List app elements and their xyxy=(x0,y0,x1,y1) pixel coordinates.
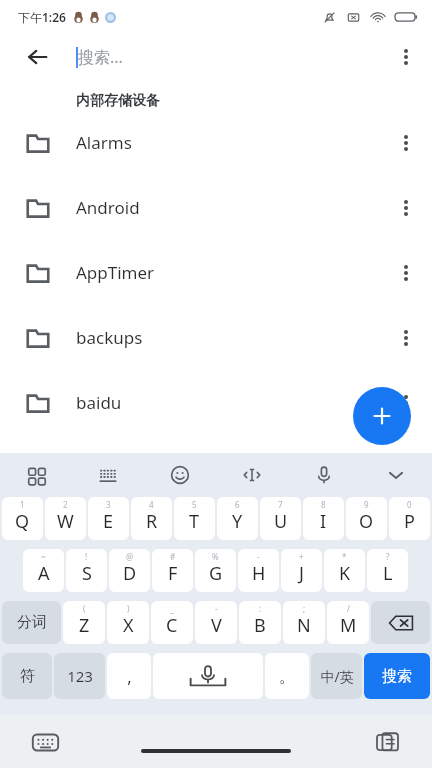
staticText: 0 xyxy=(407,499,412,510)
staticText: N xyxy=(297,613,311,638)
staticText: O xyxy=(359,509,374,534)
button[interactable]: - xyxy=(195,601,237,644)
button[interactable]: Keyboard layout xyxy=(72,453,144,497)
staticText: H xyxy=(252,561,266,586)
staticText: U xyxy=(274,509,288,534)
staticText: 7 xyxy=(278,499,283,510)
staticText: - xyxy=(215,603,218,614)
button[interactable]: # xyxy=(152,549,193,592)
button[interactable]: 符 xyxy=(2,653,52,699)
button[interactable]: _ xyxy=(151,601,193,644)
button[interactable]: Grid xyxy=(0,453,72,497)
staticText: R xyxy=(146,509,158,534)
staticText: / xyxy=(347,603,350,614)
staticText: baidu xyxy=(76,391,122,414)
button[interactable]: 中/英 xyxy=(311,653,362,699)
button[interactable]: Voice input xyxy=(288,453,360,497)
button[interactable]: Emoji xyxy=(144,453,216,497)
staticText: : xyxy=(259,603,262,614)
button[interactable]: 9 xyxy=(346,497,387,540)
button[interactable]: Backspace xyxy=(371,601,430,644)
staticText: ~ xyxy=(41,551,46,562)
button[interactable]: backups xyxy=(0,305,432,370)
button[interactable]: 8 xyxy=(303,497,344,540)
staticText: + xyxy=(299,551,304,562)
button[interactable]: ) xyxy=(107,601,149,644)
staticText: 8 xyxy=(321,499,326,510)
button[interactable]: Android xyxy=(0,175,432,240)
button[interactable]: Options for baidu xyxy=(380,370,432,435)
button[interactable]: 5 xyxy=(174,497,215,540)
button[interactable]: 搜索... xyxy=(76,34,380,80)
button[interactable]: Options for Alarms xyxy=(380,110,432,175)
staticText: 符 xyxy=(20,667,35,686)
staticText: backups xyxy=(76,326,143,349)
staticText: G xyxy=(209,561,223,586)
button[interactable]: ? xyxy=(367,549,408,592)
staticText: S xyxy=(82,561,92,586)
button[interactable]: ; xyxy=(283,601,325,644)
button[interactable]: 分词 xyxy=(2,601,61,644)
button[interactable]: Text cursor xyxy=(216,453,288,497)
staticText: 分词 xyxy=(17,613,47,632)
staticText: P xyxy=(404,509,415,534)
staticText: # xyxy=(170,551,176,562)
button[interactable]: ~ xyxy=(23,549,64,592)
button[interactable]: Alarms xyxy=(0,110,432,175)
staticText: 内部存储设备 xyxy=(76,92,160,110)
staticText: M xyxy=(340,613,357,638)
button[interactable]: Back xyxy=(0,34,76,80)
staticText: Y xyxy=(232,509,243,534)
button[interactable]: : xyxy=(239,601,281,644)
button[interactable]: Add xyxy=(353,387,411,445)
staticText: Q xyxy=(15,509,30,534)
button[interactable]: AppTimer xyxy=(0,240,432,305)
button[interactable]: 。 xyxy=(265,653,309,699)
staticText: @ xyxy=(126,551,134,562)
button[interactable]: baidu xyxy=(0,370,432,435)
button[interactable]: ! xyxy=(66,549,107,592)
button[interactable]: ( xyxy=(63,601,105,644)
button[interactable]: 4 xyxy=(131,497,172,540)
staticText: 下午1:26 xyxy=(18,9,66,25)
staticText: AppTimer xyxy=(76,261,155,284)
button[interactable]: 搜索 xyxy=(364,653,430,699)
button[interactable]: , xyxy=(107,653,151,699)
button[interactable]: Space, voice input xyxy=(153,653,263,699)
button[interactable]: Recent apps xyxy=(370,725,404,759)
button[interactable]: Options for AppTimer xyxy=(380,240,432,305)
staticText: 3 xyxy=(106,499,111,510)
staticText: 。 xyxy=(279,666,296,687)
button[interactable]: Switch keyboard xyxy=(28,725,62,759)
staticText: X xyxy=(123,613,134,638)
button[interactable]: % xyxy=(195,549,236,592)
button[interactable]: Options for Android xyxy=(380,175,432,240)
button[interactable]: 3 xyxy=(88,497,129,540)
button[interactable]: 2 xyxy=(45,497,86,540)
button[interactable]: 1 xyxy=(2,497,43,540)
staticText: 4 xyxy=(149,499,154,510)
staticText: L xyxy=(383,561,393,586)
staticText: * xyxy=(342,551,347,562)
button[interactable]: * xyxy=(324,549,365,592)
staticText: Z xyxy=(79,613,90,638)
button[interactable]: Hide keyboard xyxy=(360,453,432,497)
button[interactable]: Home xyxy=(141,749,291,753)
button[interactable]: 6 xyxy=(217,497,258,540)
button[interactable]: @ xyxy=(109,549,150,592)
button[interactable]: 7 xyxy=(260,497,301,540)
button[interactable]: + xyxy=(281,549,322,592)
button[interactable]: Options for backups xyxy=(380,305,432,370)
staticText: T xyxy=(189,509,200,534)
button[interactable]: / xyxy=(327,601,369,644)
button[interactable]: - xyxy=(238,549,279,592)
button[interactable]: More options xyxy=(380,34,432,80)
staticText: ; xyxy=(303,603,306,614)
staticText: ( xyxy=(83,603,86,614)
staticText: Android xyxy=(76,196,140,219)
button[interactable]: 123 xyxy=(54,653,105,699)
staticText: E xyxy=(103,509,114,534)
staticText: _ xyxy=(170,603,174,614)
button[interactable]: 0 xyxy=(389,497,430,540)
staticText: 5 xyxy=(192,499,197,510)
